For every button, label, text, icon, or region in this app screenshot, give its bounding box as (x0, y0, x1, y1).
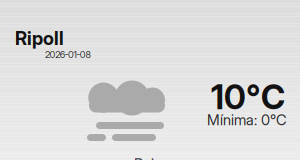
staticText: Boira (134, 155, 166, 160)
staticText: 10°C (211, 77, 285, 117)
staticText: Ripoll (15, 27, 64, 50)
staticText: Mínima: 0°C (207, 111, 287, 129)
button[interactable]: Ripoll weather, 10 degrees, fog (0, 0, 300, 160)
staticText: 2026-01-08 (45, 49, 90, 60)
